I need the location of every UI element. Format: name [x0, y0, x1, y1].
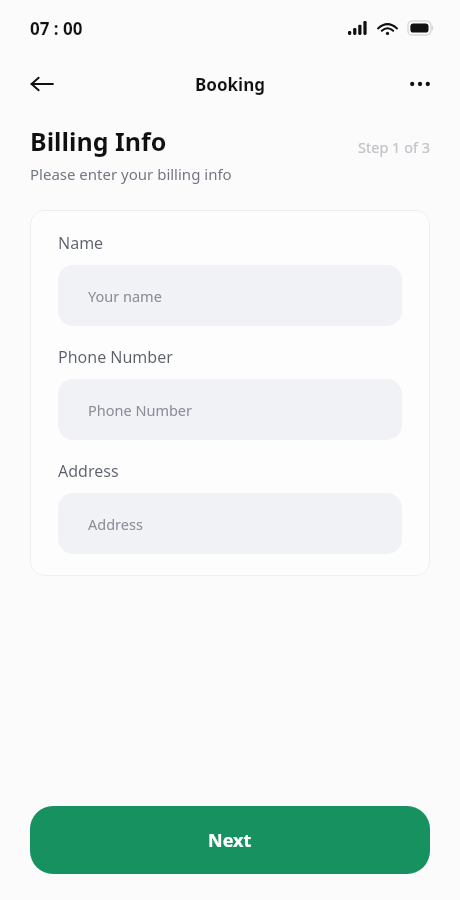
button[interactable]: Back [18, 60, 66, 108]
staticText: Phone Number [88, 400, 193, 420]
button[interactable]: Address [58, 493, 402, 554]
staticText: Name [58, 232, 104, 254]
staticText: Booking [195, 73, 265, 96]
button[interactable]: Next [30, 806, 430, 874]
staticText: Billing Info [30, 124, 167, 158]
staticText: Please enter your billing info [30, 164, 232, 184]
staticText: 07 : 00 [30, 17, 83, 40]
staticText: Next [208, 828, 252, 853]
staticText: Phone Number [58, 346, 173, 368]
button[interactable]: More options [396, 60, 444, 108]
staticText: Step 1 of 3 [358, 137, 430, 157]
button[interactable]: Phone Number [58, 379, 402, 440]
staticText: Address [88, 514, 143, 534]
staticText: Your name [88, 286, 162, 306]
button[interactable]: Your name [58, 265, 402, 326]
staticText: Address [58, 460, 119, 482]
